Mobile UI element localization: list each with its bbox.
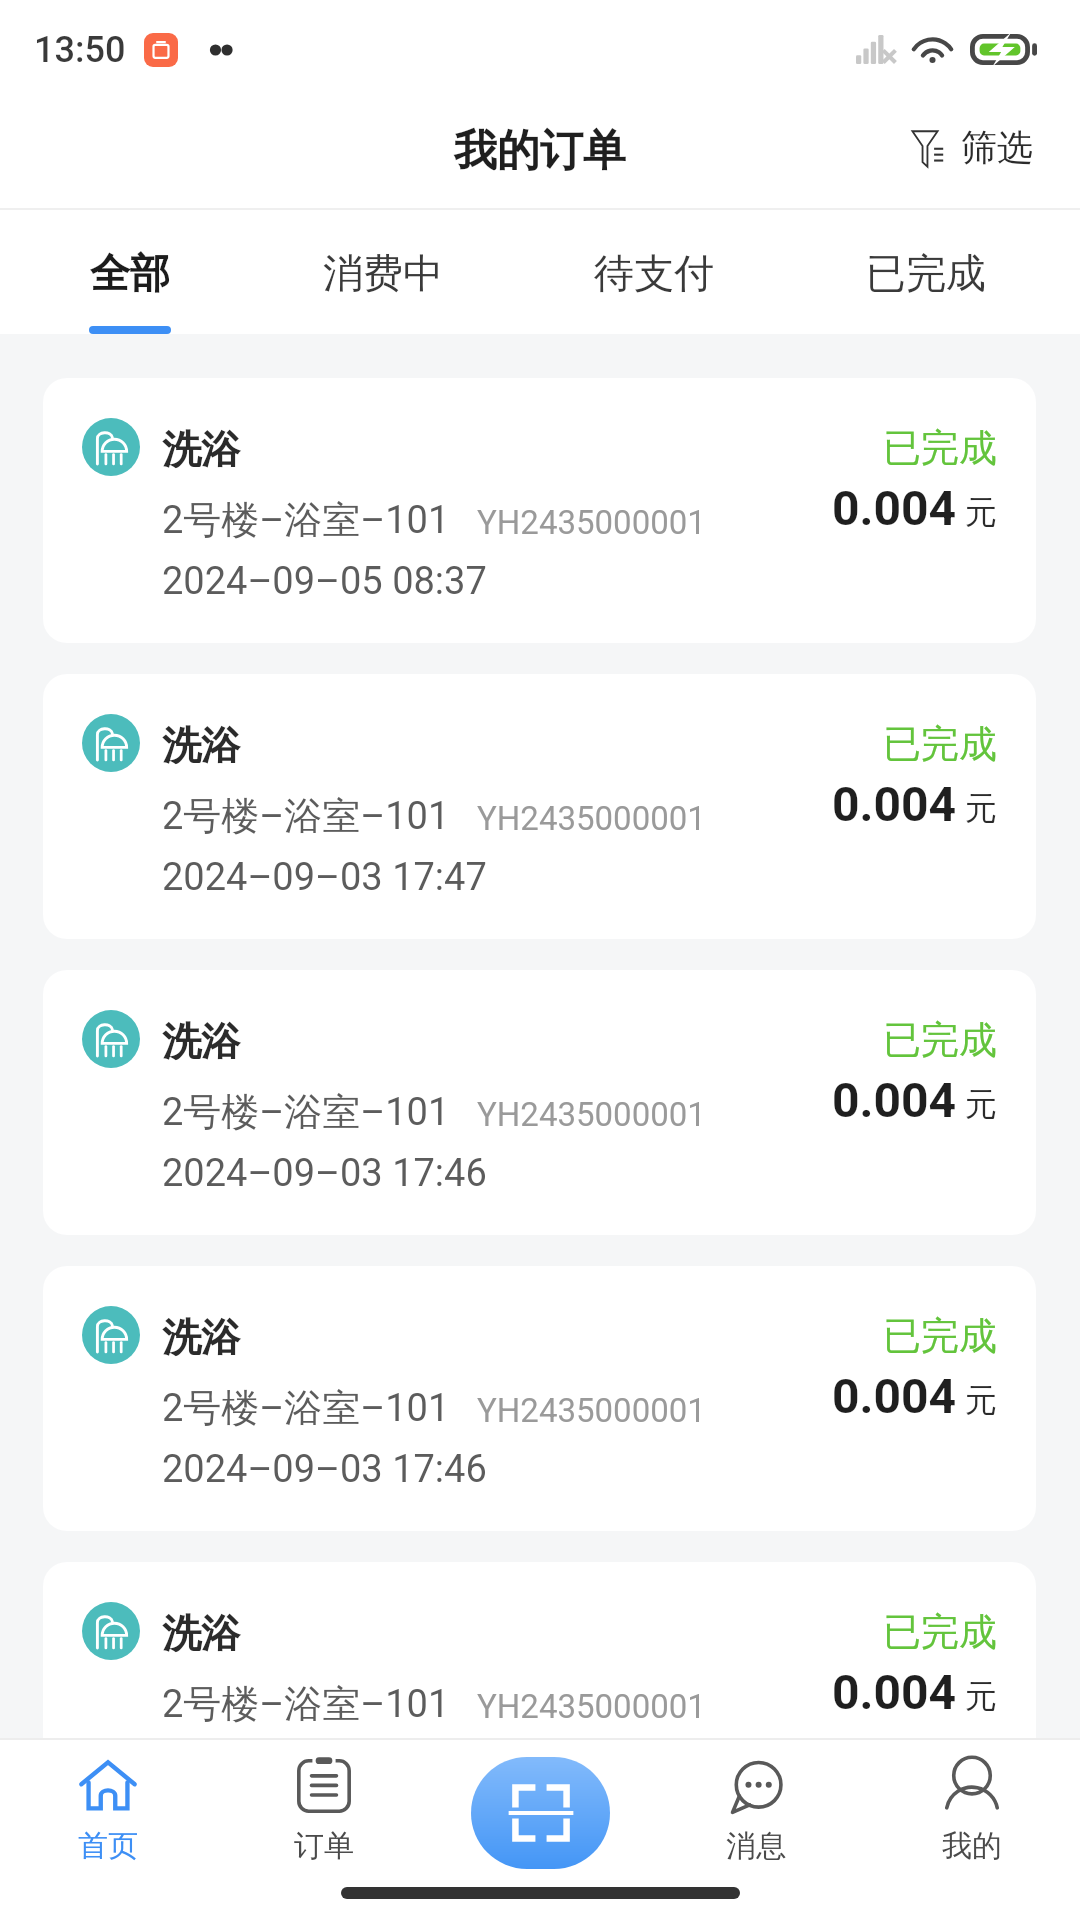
button[interactable]: 洗浴 [43, 970, 1036, 1235]
staticText: YH2435000001 [477, 503, 706, 542]
staticText: 0.004 [832, 480, 957, 536]
staticText: YH2435000001 [477, 1687, 706, 1726]
staticText: 已完成 [883, 1608, 997, 1656]
staticText: 2024–09–03 17:46 [162, 1151, 487, 1196]
button[interactable]: 洗浴 [43, 1562, 1036, 1827]
staticText: 待支付 [594, 248, 714, 298]
button[interactable]: 全部 [89, 210, 171, 334]
staticText: 洗浴 [162, 721, 240, 770]
staticText: 元 [965, 1676, 997, 1716]
staticText: 洗浴 [162, 1313, 240, 1362]
staticText: 2号楼–浴室–101 [162, 1680, 450, 1728]
button[interactable]: Scan QR code [471, 1757, 610, 1869]
staticText: 2号楼–浴室–101 [162, 1384, 450, 1432]
button[interactable]: 筛选 [887, 111, 1080, 184]
staticText: 0.004 [832, 776, 957, 832]
button[interactable]: 消费中 [323, 210, 443, 334]
staticText: 2024–09–03 17:47 [162, 855, 487, 900]
staticText: 2号楼–浴室–101 [162, 1088, 450, 1136]
button[interactable]: 洗浴 [43, 1266, 1036, 1531]
button[interactable]: 洗浴 [43, 674, 1036, 939]
staticText: 已完成 [883, 1016, 997, 1064]
button[interactable]: 已完成 [866, 210, 986, 334]
staticText: YH2435000001 [477, 799, 706, 838]
staticText: 2024–09–03 17:46 [162, 1743, 487, 1788]
staticText: 元 [965, 1084, 997, 1124]
staticText: 我的 [942, 1827, 1002, 1865]
button[interactable]: 首页 [0, 1740, 216, 1865]
staticText: 已完成 [883, 1312, 997, 1360]
staticText: 2024–09–05 08:37 [162, 559, 487, 604]
staticText: 消费中 [323, 248, 443, 298]
button[interactable]: 我的 [864, 1740, 1080, 1865]
staticText: 全部 [90, 248, 170, 298]
staticText: 已完成 [883, 720, 997, 768]
staticText: 洗浴 [162, 425, 240, 474]
staticText: 已完成 [883, 424, 997, 472]
staticText: 13:50 [34, 29, 126, 71]
staticText: 2号楼–浴室–101 [162, 792, 450, 840]
staticText: 2号楼–浴室–101 [162, 496, 450, 544]
staticText: 洗浴 [162, 1609, 240, 1658]
button[interactable]: 订单 [216, 1740, 432, 1865]
button[interactable]: 待支付 [594, 210, 714, 334]
staticText: 筛选 [961, 125, 1033, 170]
staticText: 洗浴 [162, 1017, 240, 1066]
staticText: 2024–09–03 17:46 [162, 1447, 487, 1492]
staticText: 元 [965, 1380, 997, 1420]
staticText: 0.004 [832, 1664, 957, 1720]
button[interactable]: 消息 [648, 1740, 864, 1865]
staticText: 元 [965, 492, 997, 532]
staticText: 元 [965, 788, 997, 828]
staticText: 0.004 [832, 1368, 957, 1424]
staticText: YH2435000001 [477, 1095, 706, 1134]
staticText: 已完成 [866, 248, 986, 298]
button[interactable]: 洗浴 [43, 378, 1036, 643]
staticText: YH2435000001 [477, 1391, 706, 1430]
staticText: 消息 [726, 1827, 786, 1865]
staticText: 首页 [78, 1827, 138, 1865]
staticText: 0.004 [832, 1072, 957, 1128]
staticText: 订单 [294, 1827, 354, 1865]
staticText: 我的订单 [454, 124, 626, 178]
